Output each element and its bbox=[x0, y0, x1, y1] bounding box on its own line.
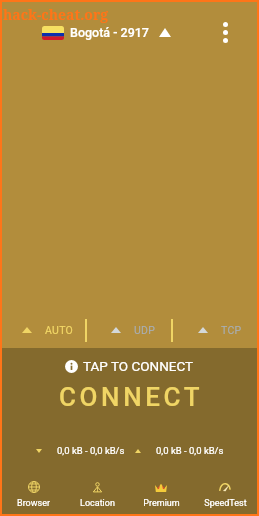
staticText: SpeedTest bbox=[204, 498, 247, 509]
staticText: Bogotá - 2917 bbox=[70, 25, 149, 40]
button[interactable]: Location bbox=[65, 466, 129, 514]
button[interactable]: AUTO bbox=[2, 312, 85, 348]
staticText: TCP bbox=[221, 324, 242, 336]
button[interactable]: Bogotá - 2917 bbox=[42, 25, 171, 40]
staticText: AUTO bbox=[45, 324, 74, 336]
button[interactable]: Premium bbox=[129, 466, 193, 514]
staticText: Browser bbox=[17, 498, 50, 509]
staticText: Location bbox=[80, 498, 115, 509]
button[interactable]: More options bbox=[205, 12, 245, 52]
staticText: 0,0 kB - 0,0 kB/s bbox=[156, 445, 224, 456]
staticText: CONNECT bbox=[59, 382, 204, 412]
staticText: 0,0 kB - 0,0 kB/s bbox=[57, 445, 125, 456]
button[interactable]: Browser bbox=[2, 466, 65, 514]
button[interactable]: TCP bbox=[173, 312, 257, 348]
button[interactable]: TAP TO CONNECT bbox=[2, 348, 257, 466]
staticText: Premium bbox=[143, 498, 180, 509]
button[interactable]: SpeedTest bbox=[193, 466, 257, 514]
button[interactable]: UDP bbox=[87, 312, 171, 348]
staticText: hack-cheat.org bbox=[3, 5, 109, 24]
staticText: UDP bbox=[134, 324, 156, 336]
staticText: TAP TO CONNECT bbox=[83, 358, 194, 374]
